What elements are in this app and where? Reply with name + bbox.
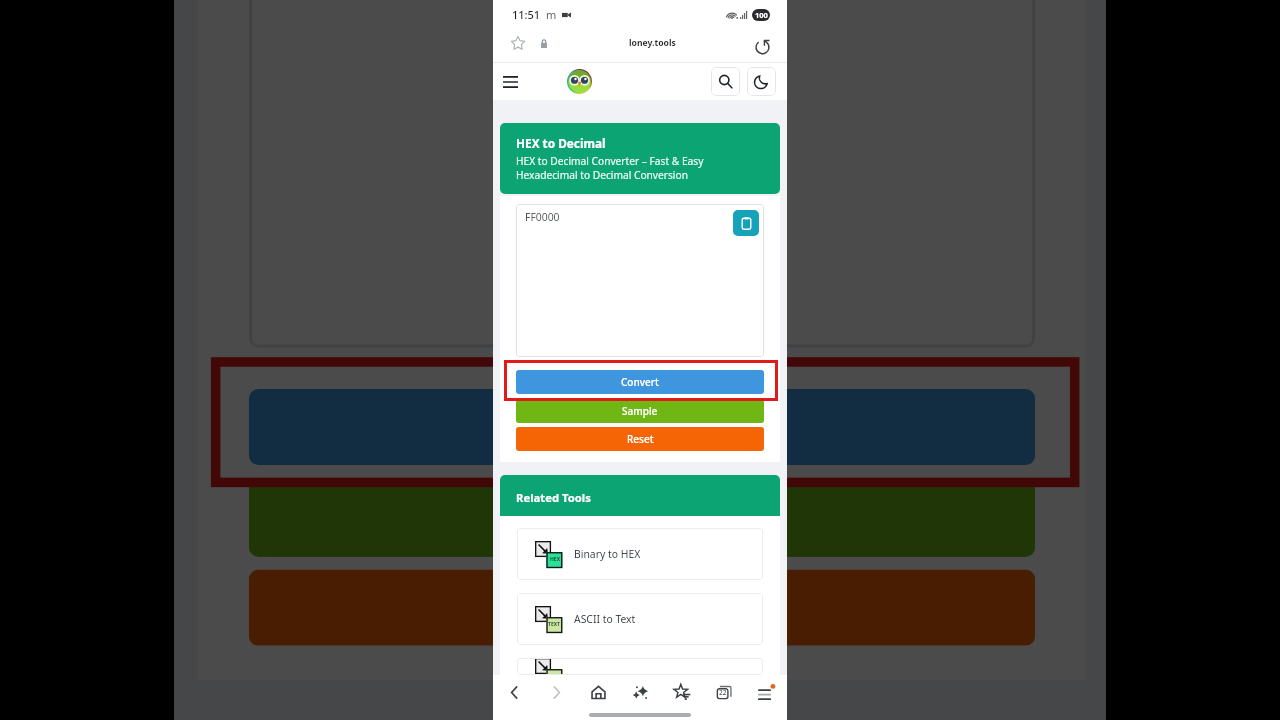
button[interactable] — [517, 658, 763, 675]
button[interactable]: Convert — [249, 389, 1035, 465]
button[interactable]: Sample — [249, 481, 1035, 557]
staticText: FF0000 — [525, 210, 560, 224]
button[interactable]: Tabs, 22 open — [703, 675, 745, 709]
button[interactable]: Bookmarks — [661, 675, 703, 709]
staticText: Convert — [621, 375, 659, 389]
button[interactable]: Forward — [535, 675, 577, 709]
staticText: Related Tools — [516, 490, 591, 505]
staticText: HEX to Decimal Converter – Fast & Easy H… — [516, 154, 704, 182]
staticText: m — [546, 7, 557, 22]
button[interactable]: Bookmark — [507, 32, 529, 54]
staticText: Reset — [601, 585, 686, 630]
button[interactable]: HEX to Decimal — [500, 123, 780, 194]
button[interactable]: Reload — [751, 35, 773, 57]
button[interactable]: Dark mode — [747, 67, 776, 96]
button[interactable]: HEX — [517, 528, 763, 580]
button[interactable]: Convert — [516, 370, 764, 394]
staticText: Sample — [585, 497, 699, 541]
staticText: 22 — [719, 688, 727, 697]
button[interactable]: Search — [711, 67, 740, 96]
staticText: HEX to Decimal — [516, 135, 606, 151]
button[interactable]: Reset — [516, 427, 764, 451]
staticText: Convert — [582, 405, 702, 449]
staticText: Reset — [627, 432, 654, 446]
button[interactable]: Assistant — [619, 675, 661, 709]
staticText: 11:51 — [512, 7, 541, 22]
button[interactable]: TEXT — [517, 593, 763, 645]
staticText: HEX — [550, 556, 560, 563]
button[interactable]: Copy to clipboard — [733, 210, 759, 236]
button[interactable]: Menu — [497, 69, 523, 95]
button[interactable]: Reset — [249, 570, 1035, 646]
button[interactable]: Site security — [534, 33, 554, 53]
button[interactable]: Back — [493, 675, 535, 709]
button[interactable]: Sample — [516, 399, 764, 423]
staticText: TEXT — [548, 621, 560, 628]
staticText: loney.tools — [629, 37, 676, 49]
staticText: Binary to HEX — [574, 547, 641, 561]
staticText: ASCII to Text — [574, 612, 636, 626]
button[interactable]: Home — [577, 675, 619, 709]
staticText: Sample — [622, 404, 658, 418]
button[interactable]: More options — [745, 675, 787, 709]
staticText: 100 — [755, 10, 768, 20]
